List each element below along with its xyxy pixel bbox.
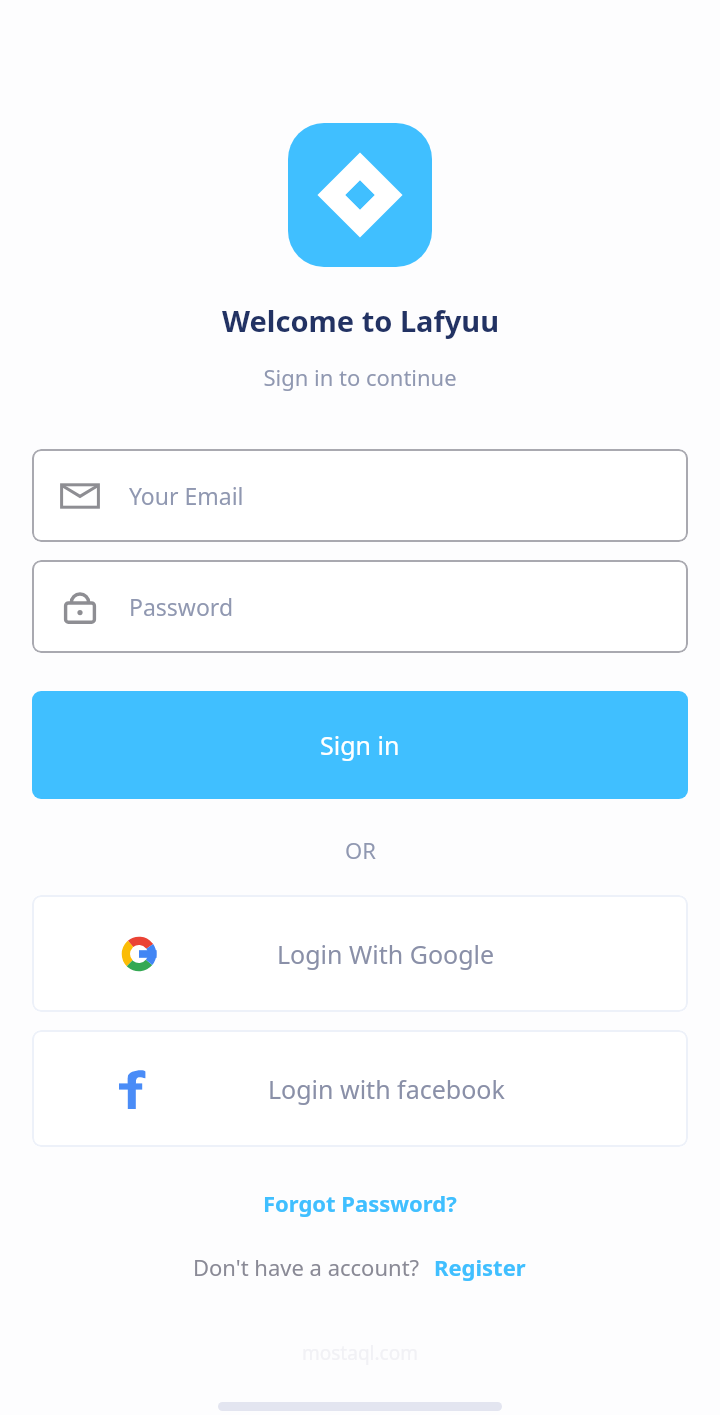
button[interactable]: Forgot Password? xyxy=(255,1184,465,1222)
button[interactable]: Your Email xyxy=(32,449,688,542)
other: Lafyuu logo xyxy=(288,123,432,267)
button[interactable]: Login with facebook xyxy=(32,1030,688,1147)
staticText: Forgot Password? xyxy=(263,1188,457,1218)
staticText: Register xyxy=(434,1252,526,1282)
button[interactable]: Login With Google xyxy=(32,895,688,1012)
staticText: Your Email xyxy=(129,480,244,511)
button[interactable]: Sign in xyxy=(32,691,688,799)
staticText: OR xyxy=(345,835,376,865)
staticText: Login With Google xyxy=(277,937,495,971)
button[interactable]: Password xyxy=(32,560,688,653)
button[interactable]: Register xyxy=(432,1250,528,1284)
staticText: Don't have a account? xyxy=(193,1252,420,1282)
staticText: Login with facebook xyxy=(268,1072,505,1106)
staticText: Welcome to Lafyuu xyxy=(222,301,499,340)
staticText: mostaql.com xyxy=(302,1340,418,1366)
staticText: Sign in to continue xyxy=(263,362,457,392)
staticText: Sign in xyxy=(320,728,400,762)
staticText: Password xyxy=(129,591,234,622)
